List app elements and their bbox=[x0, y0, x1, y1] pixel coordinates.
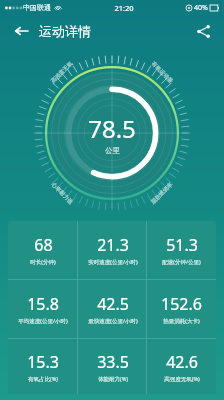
staticText: 脂肪燃烧率 bbox=[150, 181, 174, 206]
staticText: 中国联通 bbox=[23, 3, 51, 12]
staticText: 78.5 bbox=[88, 112, 136, 145]
staticText: 运动详情 bbox=[39, 23, 91, 39]
staticText: 21:20 bbox=[114, 3, 134, 13]
staticText: 热量消耗(大卡) bbox=[163, 317, 200, 325]
staticText: 时长(分钟) bbox=[30, 258, 56, 266]
staticText: 高强度无氧 bbox=[50, 60, 74, 85]
button[interactable]: 15.8 bbox=[8, 280, 78, 338]
button[interactable]: 51.3 bbox=[147, 221, 216, 279]
staticText: 公里 bbox=[105, 146, 120, 155]
staticText: 51.3 bbox=[166, 234, 198, 256]
staticText: 有氧运动量 bbox=[150, 60, 174, 85]
staticText: 有氧占比(%) bbox=[28, 375, 58, 383]
button[interactable]: 33.5 bbox=[78, 339, 147, 394]
staticText: 15.8 bbox=[27, 293, 59, 315]
staticText: 33.5 bbox=[97, 351, 129, 373]
staticText: 42.5 bbox=[97, 293, 129, 315]
staticText: 40% bbox=[194, 3, 208, 13]
button[interactable]: 21.3 bbox=[78, 221, 147, 279]
staticText: 152.6 bbox=[161, 293, 202, 315]
button[interactable]: 68 bbox=[8, 221, 78, 279]
button[interactable]: 152.6 bbox=[147, 280, 216, 338]
staticText: 实时速度(公里/小时) bbox=[88, 258, 138, 266]
button[interactable]: Back bbox=[8, 18, 34, 44]
staticText: 体能耐力(%) bbox=[98, 375, 128, 383]
staticText: 15.3 bbox=[27, 351, 59, 373]
button[interactable]: Share bbox=[190, 18, 216, 44]
staticText: 最快速度(公里/小时) bbox=[88, 317, 138, 325]
staticText: 心率耐力值 bbox=[50, 181, 74, 206]
staticText: 配速(分钟/公里) bbox=[162, 258, 201, 266]
staticText: 高强度无氧(%) bbox=[164, 375, 200, 383]
staticText: 42.6 bbox=[166, 351, 198, 373]
staticText: 平均速度(公里/小时) bbox=[18, 317, 68, 325]
button[interactable]: 42.6 bbox=[147, 339, 216, 394]
staticText: 21.3 bbox=[97, 234, 129, 256]
button[interactable]: 15.3 bbox=[8, 339, 78, 394]
button[interactable]: 42.5 bbox=[78, 280, 147, 338]
staticText: 68 bbox=[34, 234, 53, 256]
